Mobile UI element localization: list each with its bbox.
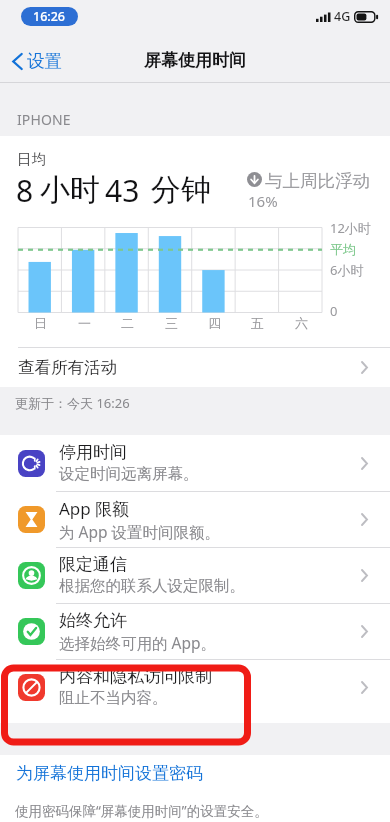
staticText: 更新于：今天 16:26 (15, 394, 130, 412)
staticText: 设置 (27, 50, 62, 72)
staticText: 阻止不当内容。 (59, 688, 168, 708)
staticText: 0 (330, 302, 338, 320)
staticText: 日 (34, 315, 47, 331)
staticText: 设定时间远离屏幕。 (59, 464, 199, 484)
staticText: 查看所有活动 (18, 357, 117, 378)
button[interactable]: 限定通信 (0, 547, 390, 603)
staticText: 8 (16, 170, 34, 211)
staticText: 根据您的联系人设定限制。 (59, 576, 245, 596)
staticText: 为 App 设置时间限额。 (59, 521, 221, 542)
staticText: 内容和隐私访问限制 (59, 666, 212, 687)
staticText: 平均 (330, 241, 356, 257)
button[interactable]: 查看所有活动 (0, 347, 390, 387)
staticText: 二 (121, 315, 134, 331)
staticText: 日均 (17, 150, 46, 168)
staticText: 三 (165, 315, 178, 331)
staticText: 16% (248, 191, 278, 211)
staticText: App 限额 (59, 497, 130, 520)
staticText: 始终允许 (59, 610, 127, 631)
staticText: 四 (208, 315, 221, 331)
button[interactable]: 停用时间 (0, 435, 390, 491)
staticText: 与上周比浮动 (265, 170, 370, 192)
staticText: 六 (295, 315, 308, 331)
staticText: 16:26 (33, 8, 66, 25)
staticText: 6小时 (330, 261, 364, 279)
button[interactable]: 设置 (8, 44, 66, 78)
staticText: 一 (78, 315, 91, 331)
staticText: 12小时 (330, 219, 371, 237)
staticText: 小时 (40, 171, 100, 209)
staticText: 43 (105, 170, 140, 211)
button[interactable]: App 限额 (0, 491, 390, 547)
staticText: 分钟 (151, 171, 211, 209)
staticText: 使用密码保障“屏幕使用时间”的设置安全。 (15, 802, 268, 820)
staticText: IPHONE (17, 110, 71, 129)
button[interactable]: 为屏幕使用时间设置密码 (0, 755, 390, 791)
button[interactable]: 内容和隐私访问限制 (0, 659, 390, 715)
staticText: 屏幕使用时间 (144, 50, 246, 71)
staticText: 停用时间 (59, 442, 127, 463)
staticText: 限定通信 (59, 554, 127, 575)
staticText: 选择始终可用的 App。 (59, 632, 216, 653)
button[interactable]: 始终允许 (0, 603, 390, 659)
staticText: 4G (334, 8, 351, 25)
staticText: 为屏幕使用时间设置密码 (16, 763, 203, 784)
staticText: 五 (251, 315, 264, 331)
